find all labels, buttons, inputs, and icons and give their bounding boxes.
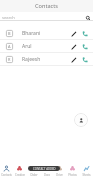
staticText: Sheets: [82, 173, 91, 177]
staticText: Contacts: [35, 2, 58, 10]
button[interactable]: Drive: [53, 165, 66, 177]
button[interactable]: Call: [80, 42, 89, 51]
staticText: Creative: [15, 173, 25, 177]
button[interactable]: A: [0, 40, 93, 53]
staticText: Drive: [56, 173, 63, 177]
staticText: Contacts: [1, 173, 12, 177]
button[interactable]: Photos: [66, 165, 79, 177]
button[interactable]: Sheets: [80, 165, 93, 177]
button[interactable]: Call: [80, 55, 89, 64]
button[interactable]: R: [0, 53, 93, 66]
staticText: CONTACT ADDED: [33, 167, 56, 171]
staticText: Dialer: [30, 173, 38, 177]
button[interactable]: Edit: [69, 42, 78, 51]
staticText: R: [8, 57, 11, 62]
button[interactable]: B: [0, 27, 93, 40]
button[interactable]: Add contact: [74, 113, 88, 127]
button[interactable]: Contacts: [0, 165, 13, 177]
button[interactable]: Edit: [69, 29, 78, 38]
button[interactable]: Creative: [13, 165, 26, 177]
button[interactable]: Edit: [69, 55, 78, 64]
staticText: Rajeesh: [22, 56, 41, 63]
staticText: Arul: [22, 43, 32, 50]
button[interactable]: Search: [84, 14, 92, 22]
staticText: Bharani: [22, 30, 41, 37]
staticText: Docs: [44, 173, 50, 177]
staticText: search: [2, 15, 15, 21]
button[interactable]: Call: [80, 29, 89, 38]
button[interactable]: Docs: [40, 165, 53, 177]
button[interactable]: Dialer: [27, 165, 40, 177]
staticText: A: [8, 44, 11, 49]
button[interactable]: CONTACT ADDED: [28, 166, 60, 171]
staticText: Photos: [68, 173, 77, 177]
staticText: B: [8, 31, 11, 36]
